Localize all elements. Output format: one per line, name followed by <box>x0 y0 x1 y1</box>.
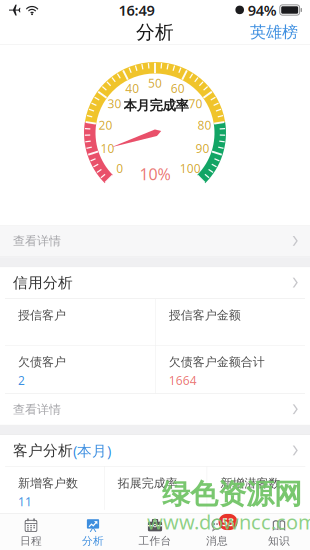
staticText: 80 <box>197 117 211 133</box>
staticText: 1664 <box>169 372 197 388</box>
button[interactable]: 消息 <box>186 513 248 550</box>
staticText: 新增潜客数 <box>220 476 280 490</box>
staticText: 欠债客户金额合计 <box>169 355 265 369</box>
staticText: 绿色资源网 <box>162 477 302 511</box>
button[interactable]: 客户分析 <box>0 435 310 466</box>
button[interactable]: 信用分析 <box>0 267 310 298</box>
staticText: 拓展完成率 <box>118 476 178 490</box>
button[interactable]: 查看详情 <box>0 394 310 425</box>
staticText: 30 <box>107 96 121 111</box>
staticText: 客户分析 <box>13 442 73 460</box>
staticText: 50 <box>148 75 162 91</box>
button[interactable]: 授信客户 <box>5 299 155 345</box>
staticText: 授信客户 <box>18 308 66 323</box>
staticText: 10% <box>139 163 170 185</box>
staticText: 信用分析 <box>13 274 73 292</box>
staticText: 分析 <box>82 534 104 547</box>
button[interactable]: 授信客户金额 <box>156 299 305 345</box>
button[interactable]: 新增客户数 <box>5 467 104 510</box>
button[interactable]: 工作台 <box>124 513 186 550</box>
button[interactable]: 欠债客户金额合计 <box>156 346 305 393</box>
staticText: 消息 <box>206 534 228 547</box>
staticText: 授信客户金额 <box>169 308 241 323</box>
button[interactable]: 日程 <box>0 513 62 550</box>
staticText: 新增客户数 <box>18 476 78 490</box>
staticText: 10 <box>100 140 114 156</box>
staticText: (本月) <box>73 441 111 460</box>
staticText: 2 <box>18 372 25 388</box>
staticText: 0 <box>116 160 123 176</box>
staticText: 11 <box>18 493 32 509</box>
staticText: 查看详情 <box>13 402 61 417</box>
staticText: 16:49 <box>118 0 154 20</box>
staticText: 60 <box>171 80 185 96</box>
staticText: 40 <box>125 80 139 96</box>
staticText: 分析 <box>136 21 174 44</box>
staticText: 100 <box>180 160 201 176</box>
button[interactable]: 分析 <box>62 513 124 550</box>
staticText: 53 <box>222 515 234 529</box>
staticText <box>220 493 223 509</box>
staticText: 知识 <box>268 534 290 547</box>
staticText: 70 <box>188 96 202 111</box>
button[interactable]: 新增潜客数 <box>207 467 305 510</box>
staticText: 日程 <box>20 534 42 547</box>
staticText: 工作台 <box>138 534 171 547</box>
staticText: 94% <box>248 0 277 20</box>
staticText: 欠债客户 <box>18 355 66 369</box>
button[interactable]: 知识 <box>248 513 310 550</box>
button[interactable]: 拓展完成率 <box>105 467 207 510</box>
button[interactable]: 英雄榜 <box>241 18 307 46</box>
staticText: 英雄榜 <box>250 22 298 42</box>
button[interactable]: 查看详情 <box>0 226 310 257</box>
button[interactable]: 欠债客户 <box>5 346 155 393</box>
staticText: www.downcc.com <box>147 508 310 535</box>
staticText: 查看详情 <box>13 234 61 248</box>
staticText: 本月完成率 <box>123 97 188 114</box>
staticText: 90 <box>196 140 210 156</box>
staticText: 20 <box>99 117 113 133</box>
